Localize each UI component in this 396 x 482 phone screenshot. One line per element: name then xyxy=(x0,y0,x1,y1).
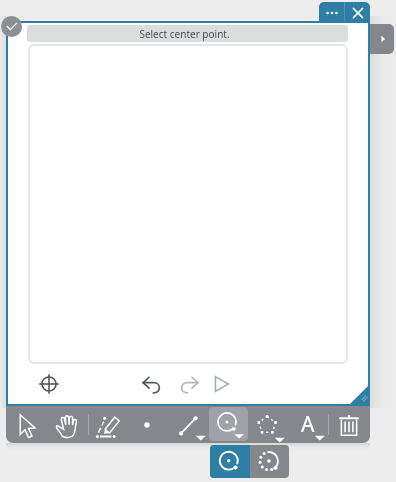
button[interactable]: Circle tool xyxy=(209,407,248,441)
button[interactable]: Close xyxy=(345,2,370,23)
button[interactable]: Circle by center and radius xyxy=(210,445,250,478)
button[interactable]: Redo xyxy=(174,369,204,399)
button[interactable]: Confirm xyxy=(1,16,22,37)
button[interactable]: More options xyxy=(319,2,344,23)
button[interactable]: Line xyxy=(172,407,208,443)
button[interactable]: Drawing canvas xyxy=(28,44,348,364)
button[interactable]: Undo xyxy=(137,369,167,399)
button[interactable]: Select xyxy=(10,408,44,442)
button[interactable]: Center point xyxy=(34,369,64,399)
button[interactable]: Select center point. xyxy=(27,25,348,42)
staticText: Select center point. xyxy=(139,27,230,41)
button[interactable]: Point xyxy=(130,408,164,442)
button[interactable]: Pan xyxy=(50,408,84,442)
button[interactable]: Polygon xyxy=(251,409,287,443)
staticText: A xyxy=(301,410,315,439)
button[interactable]: Text tool xyxy=(291,407,327,443)
button[interactable]: Delete xyxy=(332,408,366,442)
button[interactable]: Expand panel xyxy=(370,24,394,54)
button[interactable]: Circle by three points xyxy=(250,445,289,478)
button[interactable]: Play xyxy=(206,369,236,399)
button[interactable]: Freehand xyxy=(91,408,125,442)
